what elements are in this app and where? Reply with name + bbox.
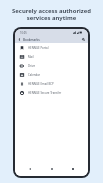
- staticText: Mail: [28, 55, 34, 59]
- staticText: Calendar: [28, 73, 41, 77]
- button[interactable]: Drive: [15, 61, 88, 70]
- button[interactable]: HENNGE Portal: [15, 43, 88, 52]
- button[interactable]: Home: [46, 163, 58, 175]
- staticText: Securely access authorized services anyt…: [12, 7, 91, 22]
- staticText: HENNGE Secure Transfer: [28, 91, 62, 95]
- button[interactable]: Recents: [67, 163, 79, 175]
- staticText: 10:05: [20, 31, 27, 35]
- staticText: Drive: [28, 64, 36, 68]
- staticText: Bookmarks: [23, 38, 40, 42]
- staticText: HENNGE Email BCP: [28, 82, 54, 86]
- button[interactable]: HENNGE Email BCP: [15, 79, 88, 88]
- button[interactable]: Back: [17, 37, 22, 42]
- button[interactable]: HENNGE Secure Transfer: [15, 88, 88, 97]
- staticText: HENNGE Portal: [28, 46, 49, 50]
- button[interactable]: Mail: [15, 52, 88, 61]
- button[interactable]: Back: [24, 163, 36, 175]
- button[interactable]: Calendar: [15, 70, 88, 79]
- button[interactable]: Search: [81, 37, 86, 42]
